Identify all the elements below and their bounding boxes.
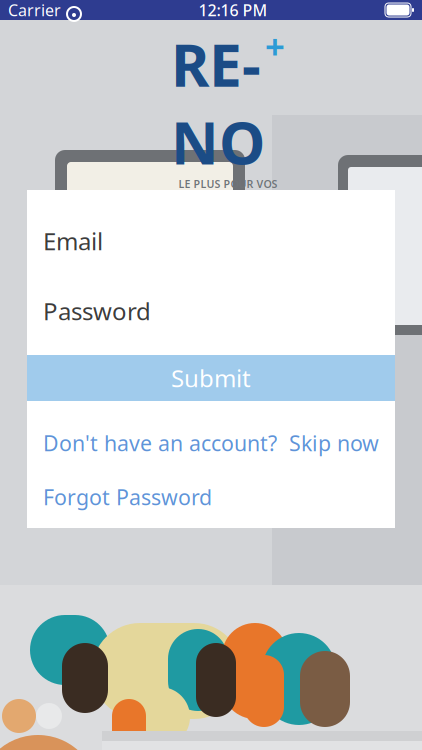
staticText: Submit — [171, 362, 251, 394]
button[interactable]: Skip now — [289, 429, 379, 457]
staticText: Carrier — [8, 0, 61, 21]
staticText: 12:16 PM — [198, 0, 267, 21]
button[interactable]: Don't have an account? — [43, 429, 277, 457]
staticText: Skip now — [289, 429, 379, 457]
staticText: RENO — [171, 25, 265, 181]
staticText: Don't have an account? — [43, 429, 277, 457]
button[interactable]: Submit — [27, 355, 395, 401]
button[interactable]: Email — [27, 224, 395, 258]
staticText: Forgot Password — [43, 483, 212, 511]
button[interactable]: Password — [27, 294, 395, 328]
staticText: + — [265, 23, 285, 69]
staticText: Email — [43, 225, 103, 257]
staticText: LE PLUS POUR VOS RENOS — [178, 177, 277, 205]
button[interactable]: Forgot Password — [43, 483, 212, 511]
staticText: Password — [43, 295, 151, 327]
